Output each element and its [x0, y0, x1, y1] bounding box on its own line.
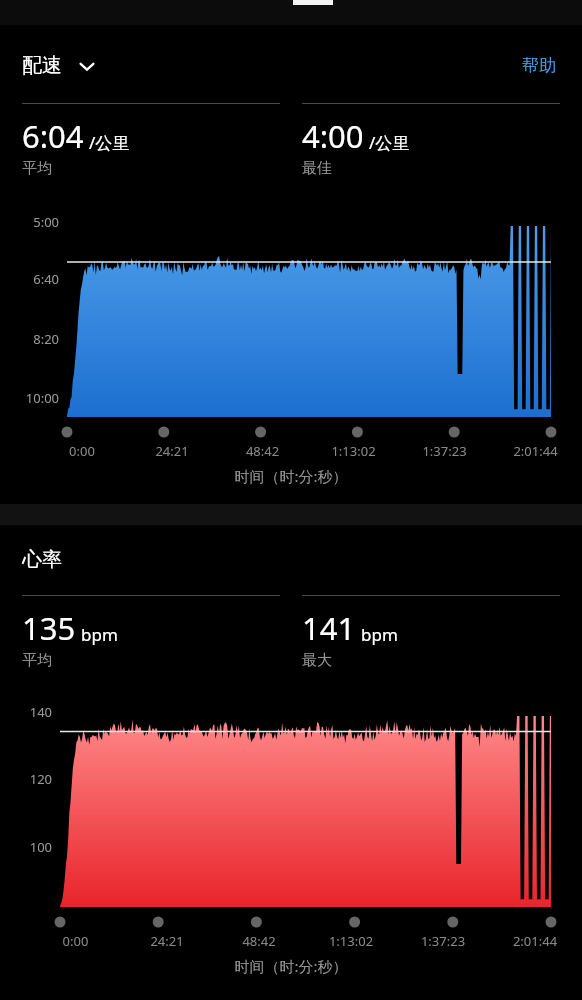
staticText: 配速: [22, 53, 62, 78]
staticText: 6:04: [22, 115, 84, 157]
staticText: 2:01:44: [489, 932, 581, 950]
staticText: 时间（时:分:秒）: [0, 956, 582, 976]
button[interactable]: 141: [302, 595, 560, 670]
staticText: 2:01:44: [490, 442, 581, 460]
staticText: bpm: [361, 623, 398, 646]
staticText: 1:37:23: [399, 442, 490, 460]
staticText: bpm: [81, 623, 118, 646]
staticText: 135: [22, 607, 76, 649]
staticText: 24:21: [127, 442, 217, 460]
button[interactable]: 135: [22, 595, 280, 670]
button[interactable]: 心率: [22, 547, 62, 572]
staticText: 48:42: [217, 442, 308, 460]
staticText: 5:00: [0, 213, 59, 231]
staticText: 时间（时:分:秒）: [0, 466, 582, 486]
staticText: 120: [0, 770, 52, 788]
staticText: 141: [302, 607, 356, 649]
staticText: 4:00: [302, 115, 364, 157]
staticText: 最大: [302, 651, 332, 670]
staticText: 8:20: [0, 330, 59, 348]
staticText: 10:00: [0, 389, 59, 407]
staticText: 48:42: [213, 932, 305, 950]
button[interactable]: 帮助: [518, 51, 560, 80]
button[interactable]: 6:04: [22, 103, 280, 178]
button[interactable]: 4:00: [302, 103, 560, 178]
staticText: 1:13:02: [308, 442, 399, 460]
staticText: 心率: [22, 547, 62, 572]
staticText: 100: [0, 838, 52, 856]
other: Change metric: [76, 55, 98, 77]
staticText: 最佳: [302, 159, 332, 178]
staticText: /公里: [89, 131, 130, 154]
staticText: 1:37:23: [397, 932, 489, 950]
staticText: 24:21: [121, 932, 213, 950]
staticText: 6:40: [0, 270, 59, 288]
staticText: /公里: [369, 131, 410, 154]
staticText: 140: [0, 703, 52, 721]
staticText: 平均: [22, 159, 52, 178]
staticText: 平均: [22, 651, 52, 670]
staticText: 帮助: [522, 55, 556, 76]
staticText: 1:13:02: [305, 932, 397, 950]
staticText: 0:00: [37, 442, 127, 460]
button[interactable]: 配速: [22, 53, 98, 78]
staticText: 0:00: [30, 932, 121, 950]
